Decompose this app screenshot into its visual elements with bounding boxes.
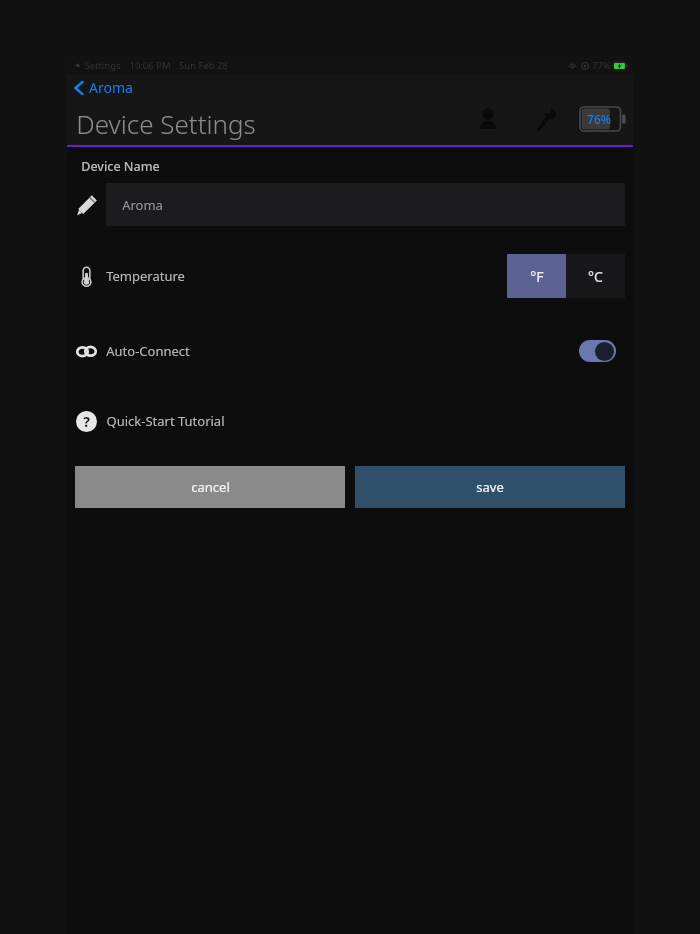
staticText: 76% [587,111,611,127]
staticText: cancel [191,478,230,496]
button[interactable]: ? [67,406,633,436]
button[interactable]: Aroma [74,78,133,97]
button[interactable]: Battery 76 percent [580,107,626,131]
button[interactable]: Edit device name [67,183,106,226]
staticText: Aroma [89,78,133,97]
button[interactable]: save [355,466,625,508]
staticText: °F [530,267,544,286]
button[interactable]: °F [507,254,566,298]
staticText: °C [588,267,603,286]
button[interactable]: °C [566,254,625,298]
staticText: ? [83,412,90,431]
staticText: Device Name [81,158,160,175]
staticText: 77% [592,59,611,72]
staticText: Auto-Connect [106,342,190,360]
staticText: Device Settings [76,106,256,141]
button[interactable]: Aroma [106,183,625,226]
staticText: Quick-Start Tutorial [106,412,225,430]
button[interactable]: Tools [528,101,564,137]
staticText: 10:06 PM [129,59,171,72]
staticText: save [476,478,504,496]
staticText: Temperature [106,267,185,285]
staticText: Aroma [122,196,163,214]
button[interactable]: Auto-Connect toggle [579,340,616,362]
staticText: Sun Feb 28 [179,59,228,72]
button[interactable]: cancel [75,466,345,508]
staticText: Settings [84,59,121,72]
button[interactable]: Account [470,101,506,137]
